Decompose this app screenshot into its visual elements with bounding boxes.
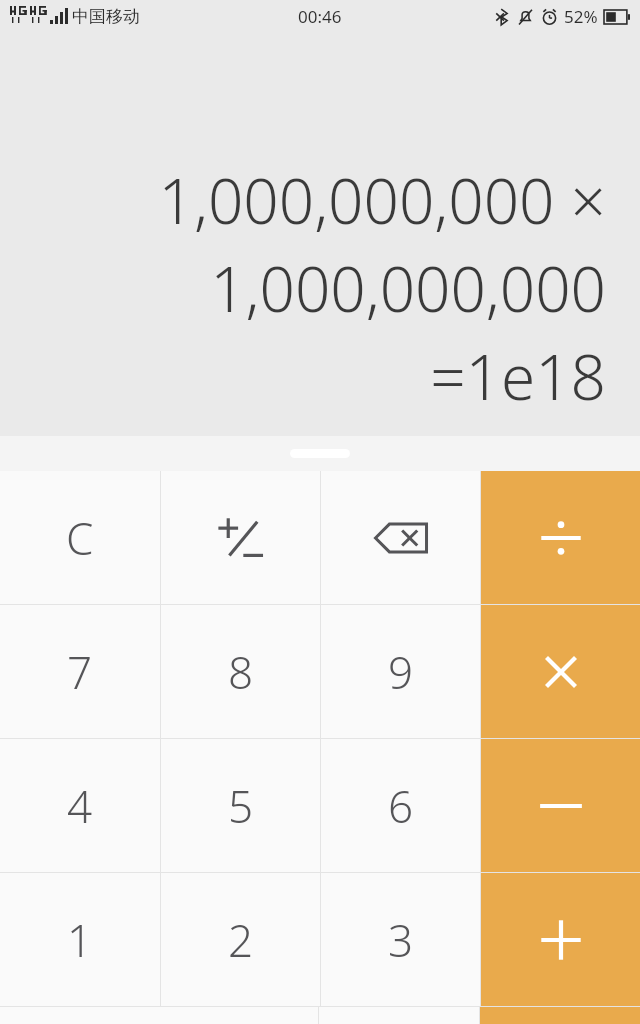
staticText: 4 bbox=[67, 776, 93, 836]
staticText: 00:46 bbox=[298, 5, 342, 28]
staticText: 1,000,000,000 × bbox=[158, 158, 606, 242]
button[interactable]: Plus bbox=[481, 873, 640, 1006]
staticText: 7 bbox=[67, 642, 93, 702]
button[interactable]: 1 bbox=[0, 873, 160, 1006]
staticText: 中国移动 bbox=[72, 6, 140, 27]
button[interactable]: 4 bbox=[0, 739, 160, 872]
staticText: 2 bbox=[228, 910, 254, 970]
staticText: C bbox=[66, 508, 94, 568]
staticText: 1 bbox=[67, 910, 93, 970]
button[interactable]: Minus bbox=[481, 739, 640, 872]
staticText: 52% bbox=[564, 5, 598, 28]
button[interactable]: C bbox=[0, 471, 160, 604]
staticText: 8 bbox=[228, 642, 254, 702]
button[interactable]: Multiply bbox=[481, 605, 640, 738]
button[interactable]: 6 bbox=[321, 739, 480, 872]
staticText: =1e18 bbox=[430, 334, 606, 418]
button[interactable]: Plus minus bbox=[161, 471, 320, 604]
button[interactable]: Divide bbox=[481, 471, 640, 604]
staticText: 3 bbox=[388, 910, 414, 970]
button[interactable]: 3 bbox=[321, 873, 480, 1006]
button[interactable]: 7 bbox=[0, 605, 160, 738]
button[interactable]: 9 bbox=[321, 605, 480, 738]
button[interactable]: 8 bbox=[161, 605, 320, 738]
button[interactable]: 5 bbox=[161, 739, 320, 872]
button[interactable]: 2 bbox=[161, 873, 320, 1006]
staticText: 6 bbox=[388, 776, 414, 836]
staticText: 9 bbox=[388, 642, 414, 702]
staticText: 1,000,000,000 bbox=[210, 246, 606, 330]
button[interactable]: Backspace bbox=[321, 471, 480, 604]
staticText: 5 bbox=[228, 776, 254, 836]
